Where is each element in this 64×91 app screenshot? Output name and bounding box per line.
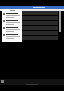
button[interactable] bbox=[2, 34, 22, 39]
button[interactable] bbox=[2, 20, 22, 25]
button[interactable] bbox=[2, 13, 22, 18]
button[interactable] bbox=[2, 27, 22, 32]
